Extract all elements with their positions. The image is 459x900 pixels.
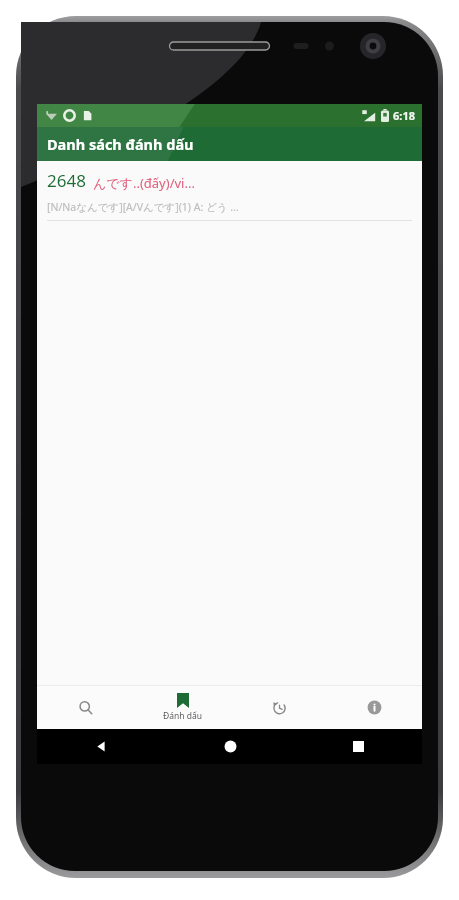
button[interactable]: Recents [294,729,422,764]
button[interactable]: Info [326,686,422,729]
button[interactable]: History [230,686,326,729]
button[interactable]: Home [166,729,294,764]
staticText: 6:18 [393,108,415,123]
button[interactable]: Đánh dấu [134,686,230,729]
staticText: Danh sách đánh dấu [47,134,194,154]
button[interactable]: Back [37,729,166,764]
button[interactable]: 2648 [37,161,422,221]
button[interactable]: Search [37,686,134,729]
staticText: Đánh dấu [163,710,202,722]
staticText: んです..(đấy)/vi... [93,174,195,192]
staticText: 2648 [47,169,86,192]
staticText: [N/Naなんです][A/Vんです](1) A: どう ... [47,200,239,214]
